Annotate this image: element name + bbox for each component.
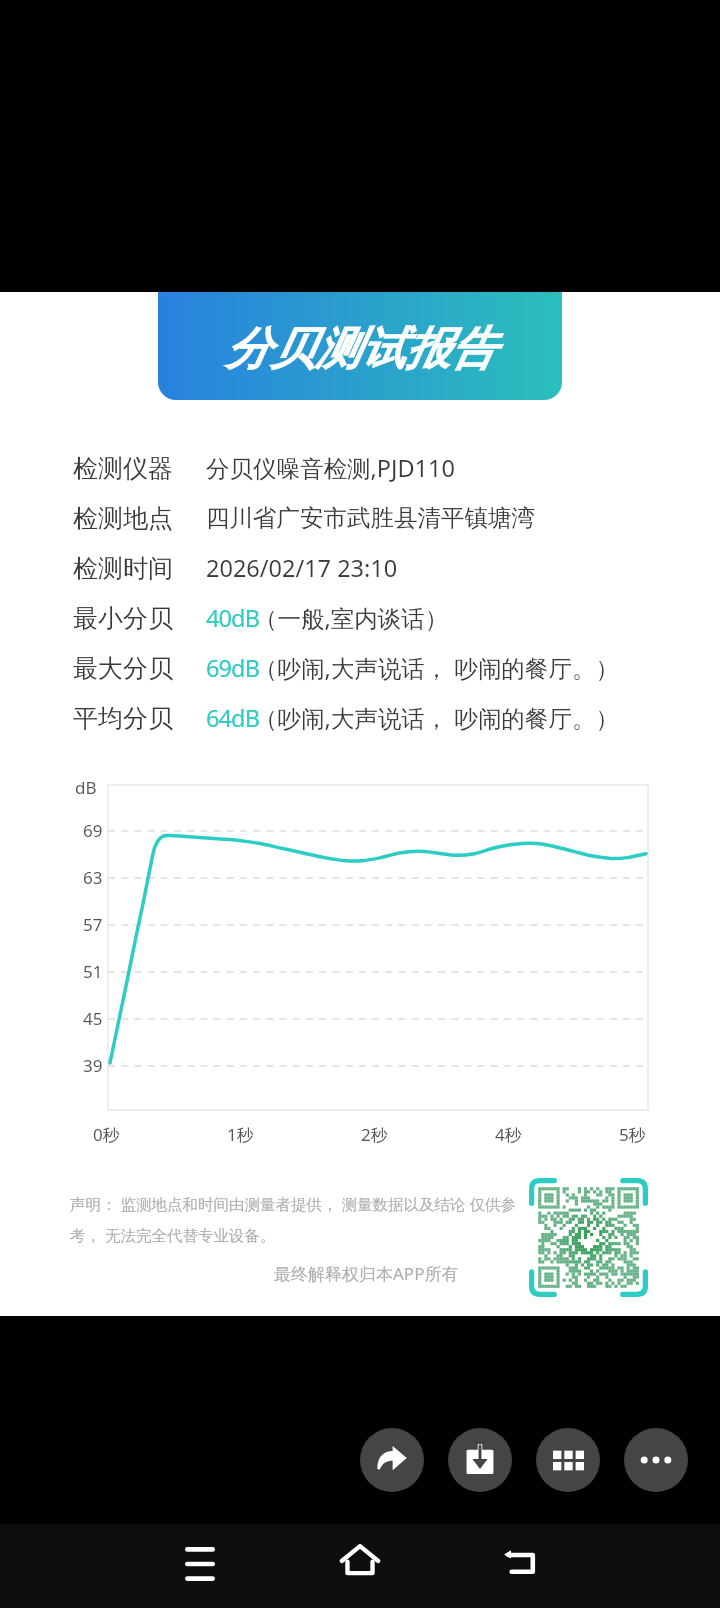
staticText: 检测地点 [73, 503, 173, 534]
staticText: 分贝仪噪音检测,PJD110 [206, 452, 455, 484]
staticText: 2026/02/17 23:10 [206, 552, 398, 584]
staticText: 45 [83, 1007, 103, 1030]
button[interactable]: Home [320, 1524, 400, 1604]
staticText: 最终解释权归本APP所有 [274, 1262, 459, 1285]
staticText: 考， 无法完全代替专业设备。 [70, 1224, 276, 1245]
staticText: 最大分贝 [73, 653, 173, 684]
button[interactable]: Save [448, 1428, 512, 1492]
staticText: 69dB [206, 652, 260, 684]
staticText: 2秒 [361, 1123, 388, 1146]
staticText: 1秒 [227, 1123, 254, 1146]
staticText: 40dB [206, 602, 260, 634]
staticText: （吵闹,大声说话， 吵闹的餐厅。） [254, 702, 619, 734]
staticText: 4秒 [495, 1123, 522, 1146]
button[interactable]: Apps [536, 1428, 600, 1492]
staticText: （一般,室内谈话） [254, 602, 449, 634]
staticText: 平均分贝 [73, 703, 173, 734]
button[interactable]: Recent apps [160, 1524, 240, 1604]
button[interactable]: Share [360, 1428, 424, 1492]
staticText: 63 [83, 866, 103, 889]
staticText: 39 [83, 1054, 103, 1077]
staticText: 51 [83, 960, 103, 983]
staticText: 分贝测试报告 [225, 321, 495, 378]
staticText: 四川省广安市武胜县清平镇塘湾 [206, 503, 535, 533]
staticText: 57 [83, 913, 103, 936]
staticText: 64dB [206, 702, 260, 734]
staticText: 声明： 监测地点和时间由测量者提供， 测量数据以及结论 仅供参 [70, 1193, 517, 1214]
staticText: 最小分贝 [73, 603, 173, 634]
button[interactable]: More [624, 1428, 688, 1492]
staticText: 69 [83, 819, 103, 842]
staticText: （吵闹,大声说话， 吵闹的餐厅。） [254, 652, 619, 684]
staticText: 检测仪器 [73, 453, 173, 484]
staticText: 5秒 [619, 1123, 646, 1146]
button[interactable]: Back [480, 1524, 560, 1604]
staticText: dB [75, 776, 97, 799]
staticText: 0秒 [93, 1123, 120, 1146]
staticText: 检测时间 [73, 553, 173, 584]
